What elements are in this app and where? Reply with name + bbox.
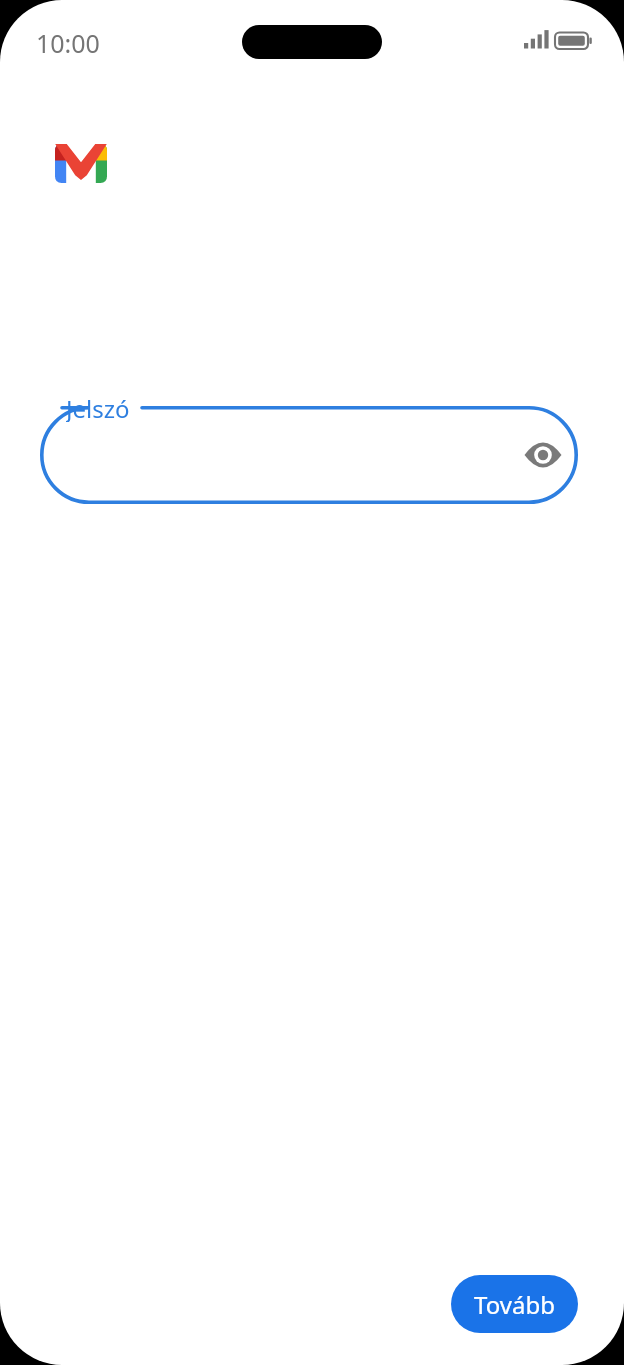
staticText: Jelszó [66,392,130,422]
staticText: 10:00 [36,26,100,60]
button[interactable] [40,406,578,504]
button[interactable]: Tovább [451,1275,578,1333]
button[interactable]: Jelszó megjelenítése [515,427,571,483]
staticText: Tovább [474,1288,555,1321]
